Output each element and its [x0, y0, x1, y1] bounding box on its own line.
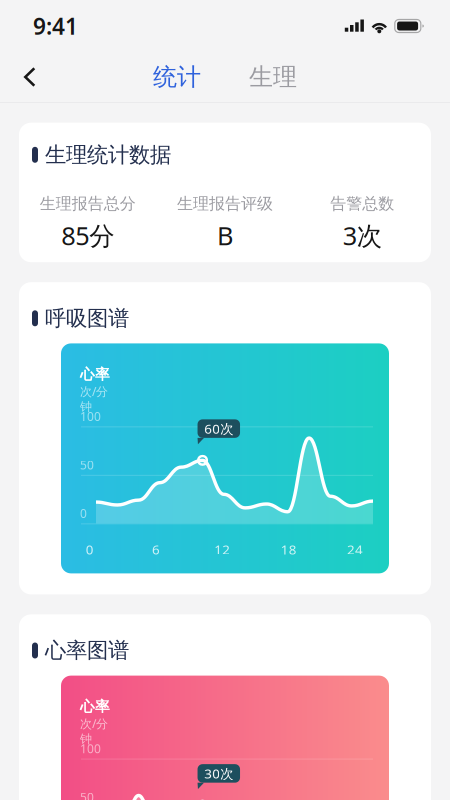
- staticText: 生理报告评级: [177, 194, 273, 214]
- staticText: 次/分: [80, 383, 108, 399]
- staticText: 0: [86, 540, 94, 558]
- staticText: 生理: [249, 62, 297, 92]
- staticText: 钟: [80, 399, 92, 414]
- staticText: 24: [347, 540, 363, 558]
- staticText: 85分: [61, 219, 114, 252]
- staticText: 50: [80, 789, 94, 800]
- staticText: 生理报告总分: [40, 194, 136, 214]
- staticText: 告警总数: [330, 194, 394, 214]
- button[interactable]: 统计: [148, 54, 206, 100]
- staticText: 60次: [204, 420, 233, 437]
- button[interactable]: 生理: [244, 54, 302, 100]
- staticText: 12: [214, 540, 230, 558]
- staticText: 统计: [153, 62, 201, 92]
- staticText: 呼吸图谱: [45, 305, 129, 331]
- staticText: 心率: [80, 698, 110, 716]
- staticText: 100: [80, 408, 101, 424]
- staticText: 钟: [80, 732, 92, 746]
- staticText: 100: [80, 741, 101, 756]
- staticText: 次/分: [80, 716, 108, 731]
- staticText: 心率图谱: [45, 637, 129, 664]
- staticText: 18: [281, 540, 297, 558]
- staticText: B: [217, 219, 233, 252]
- button[interactable]: Back: [0, 56, 52, 98]
- staticText: 心率: [80, 365, 110, 383]
- staticText: 6: [152, 540, 160, 558]
- staticText: 0: [80, 505, 87, 521]
- staticText: 50: [80, 457, 94, 473]
- staticText: 30次: [204, 765, 233, 782]
- staticText: 3次: [343, 219, 382, 252]
- staticText: 9:41: [33, 11, 78, 41]
- staticText: 生理统计数据: [45, 142, 171, 168]
